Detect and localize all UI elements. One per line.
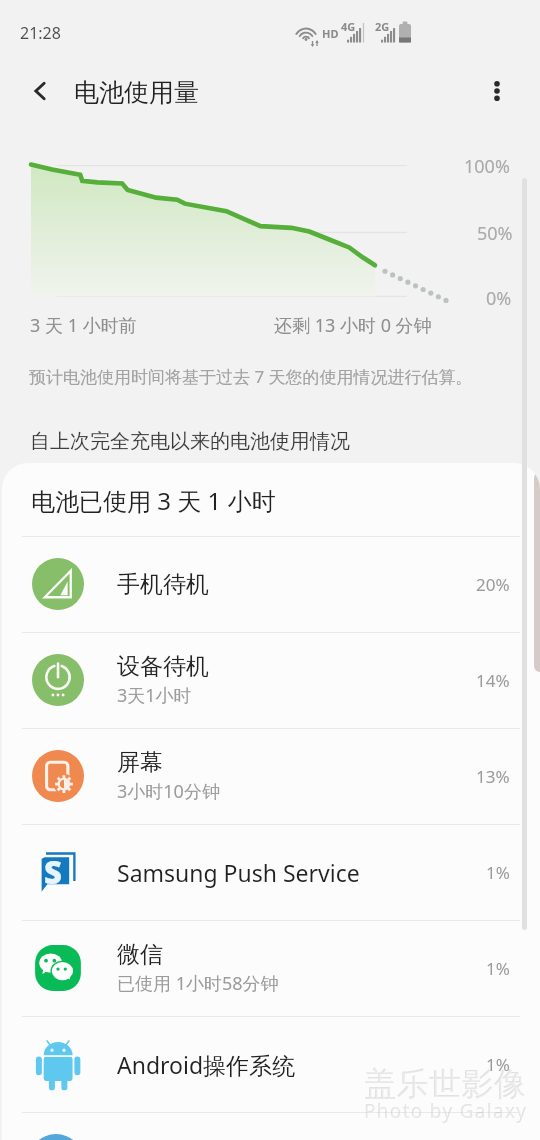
staticText: 预计电池使用时间将基于过去 7 天您的使用情况进行估算。 (29, 365, 473, 388)
button[interactable]: 手机待机 (2, 536, 540, 632)
button[interactable]: Back (16, 67, 64, 115)
staticText: 1% (486, 957, 510, 980)
staticText: 电池已使用 3 天 1 小时 (31, 484, 276, 517)
staticText: 1% (486, 861, 510, 884)
staticText: 0% (486, 286, 512, 311)
staticText: 4G (341, 19, 356, 34)
button[interactable]: 设备待机 (2, 632, 540, 728)
button[interactable]: 屏幕 (2, 728, 540, 824)
staticText: 盖乐世影像 (365, 1065, 528, 1105)
staticText: 盖乐世影像 (364, 1064, 527, 1104)
staticText: 14% (476, 669, 510, 692)
staticText: 设备待机 (117, 652, 209, 681)
staticText: 屏幕 (117, 748, 163, 777)
button[interactable]: S (2, 824, 540, 920)
staticText: 3 天 1 小时前 (30, 313, 137, 338)
staticText: HD (322, 26, 339, 41)
staticText: 微信 (117, 940, 163, 969)
staticText: 已使用 1小时58分钟 (117, 971, 279, 996)
staticText: 13% (476, 765, 510, 788)
staticText: 3天1小时 (117, 683, 192, 708)
button[interactable]: 微信 (2, 920, 540, 1016)
staticText: 自上次完全充电以来的电池使用情况 (30, 429, 350, 454)
staticText: Photo by Galaxy (364, 1098, 528, 1124)
staticText: 3小时10分钟 (117, 779, 220, 804)
staticText: 手机待机 (117, 570, 209, 599)
staticText: 100% (464, 154, 510, 179)
staticText: Android操作系统 (117, 1049, 296, 1080)
staticText: Photo by Galaxy (365, 1099, 529, 1125)
staticText: 1% (486, 1053, 510, 1076)
staticText: 2G (375, 19, 390, 34)
staticText: 20% (476, 573, 510, 596)
staticText: 50% (477, 221, 513, 246)
staticText: 还剩 13 小时 0 分钟 (274, 313, 432, 338)
staticText: 电池使用量 (74, 77, 199, 108)
button[interactable] (28, 1134, 84, 1140)
button[interactable]: More options (473, 67, 521, 115)
staticText: S (44, 851, 62, 893)
button[interactable]: Android操作系统 (2, 1016, 540, 1112)
staticText: Samsung Push Service (117, 857, 360, 888)
staticText: 21:28 (20, 22, 61, 44)
